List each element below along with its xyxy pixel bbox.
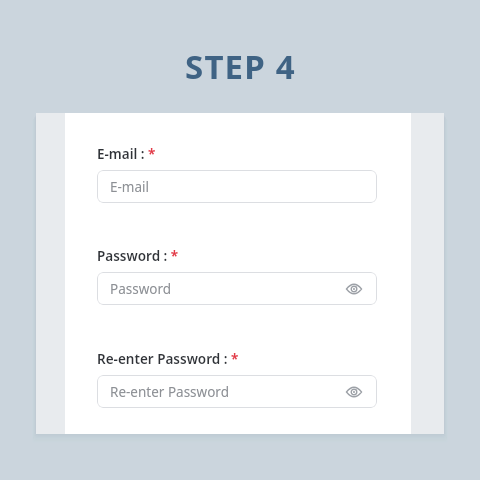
staticText: E-mail: [110, 178, 364, 196]
button[interactable]: Show password: [344, 279, 364, 299]
staticText: Password: [110, 280, 344, 298]
staticText: Re-enter Password : *: [97, 350, 239, 368]
staticText: Password : *: [97, 247, 179, 265]
staticText: E-mail : *: [97, 145, 156, 163]
staticText: STEP 4: [185, 44, 296, 89]
button[interactable]: E-mail: [97, 170, 377, 203]
button[interactable]: Password: [97, 272, 377, 305]
staticText: Re-enter Password: [110, 383, 344, 401]
button[interactable]: Re-enter Password: [97, 375, 377, 408]
button[interactable]: Show password: [344, 382, 364, 402]
